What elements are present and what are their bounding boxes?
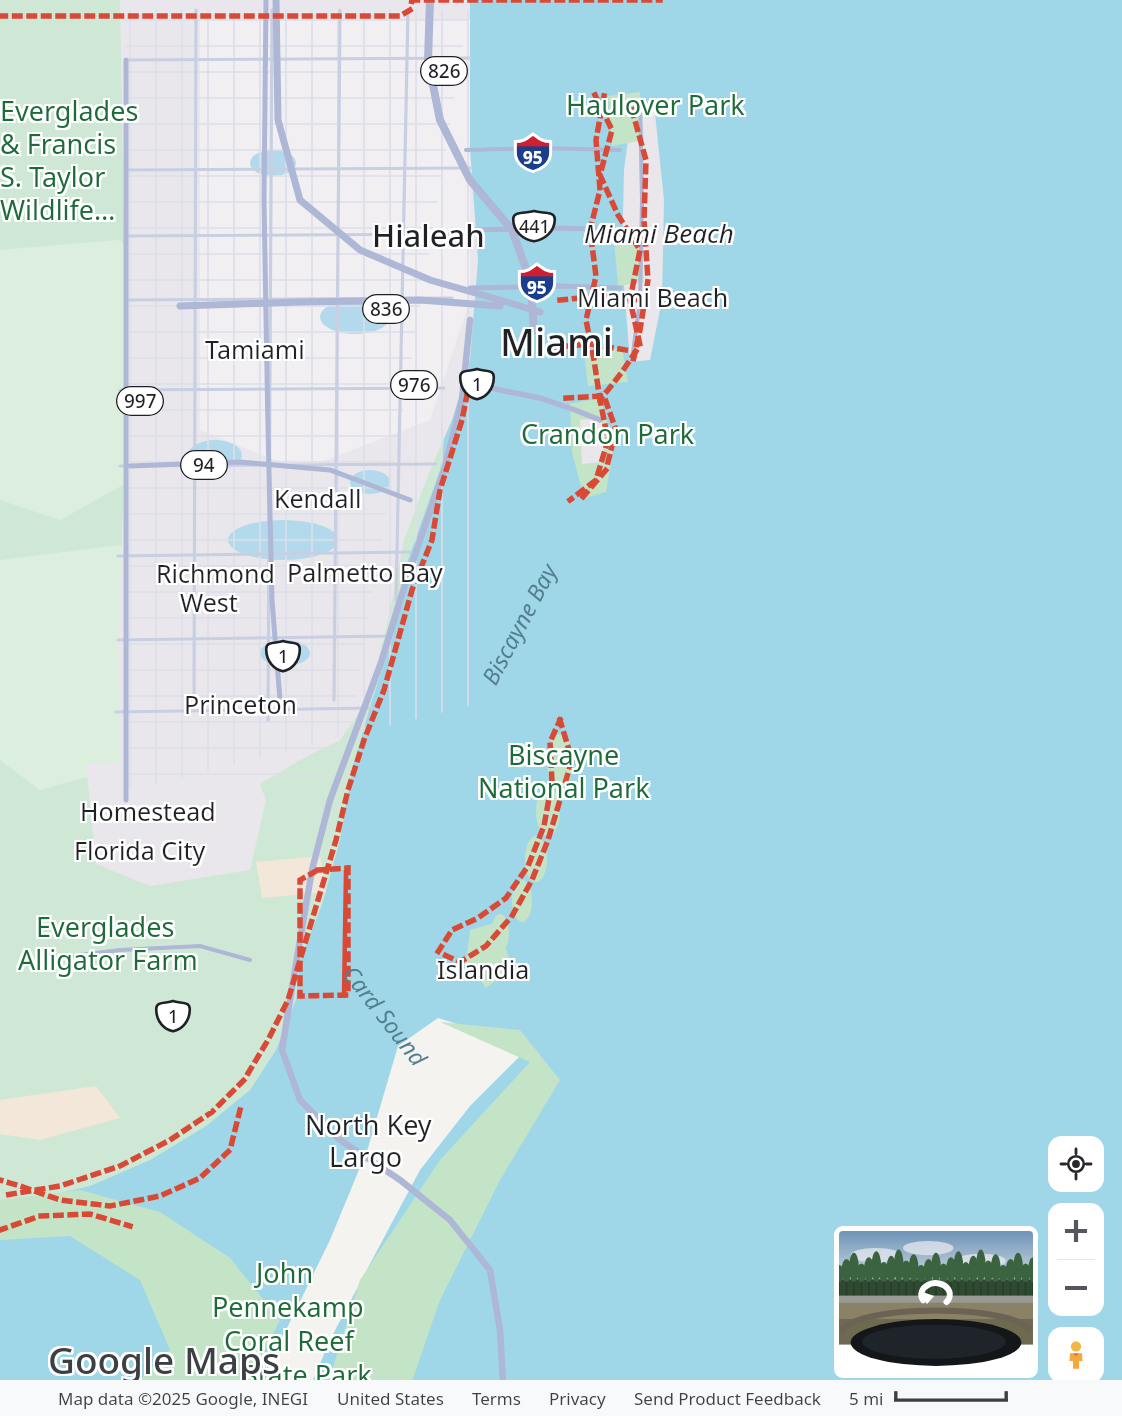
button[interactable]: Route 997: [116, 386, 164, 416]
button[interactable]: Street View pegman: [1048, 1327, 1104, 1383]
staticText: Miami Beach: [582, 215, 732, 250]
staticText: Alligator Farm: [18, 943, 198, 980]
staticText: Pennekamp: [214, 1286, 366, 1323]
staticText: 1: [278, 644, 289, 669]
button[interactable]: US route 1: [152, 999, 194, 1032]
staticText: John: [254, 1252, 312, 1289]
staticText: Palmetto Bay: [287, 557, 443, 591]
button[interactable]: US route 441: [508, 209, 560, 242]
button[interactable]: Route 826: [420, 56, 468, 86]
staticText: Crandon Park: [521, 413, 695, 450]
staticText: Kendall: [274, 481, 362, 515]
staticText: Miami Beach: [584, 213, 734, 248]
staticText: Biscayne: [506, 736, 618, 773]
staticText: 826: [428, 58, 461, 84]
staticText: National Park: [478, 769, 650, 806]
staticText: Florida City: [76, 835, 208, 869]
staticText: Princeton: [184, 687, 298, 721]
staticText: Alligator Farm: [20, 943, 200, 980]
staticText: Haulover Park: [568, 88, 747, 125]
staticText: West: [178, 587, 236, 621]
staticText: National Park: [476, 769, 648, 806]
staticText: Miami Beach: [579, 280, 731, 314]
staticText: Coral Reef: [222, 1320, 352, 1357]
staticText: Largo: [329, 1138, 403, 1175]
button[interactable]: Route 976: [390, 370, 438, 400]
staticText: John: [258, 1254, 316, 1291]
staticText: Richmond: [154, 558, 273, 592]
staticText: Biscayne: [510, 734, 622, 771]
button[interactable]: Privacy: [549, 1387, 606, 1410]
staticText: Wildlife…: [0, 189, 114, 226]
staticText: Wildlife…: [0, 193, 114, 230]
button[interactable]: Send Product Feedback: [634, 1387, 821, 1410]
button[interactable]: Terms: [472, 1387, 521, 1410]
staticText: Princeton: [182, 687, 296, 721]
button[interactable]: Zoom in: [1048, 1203, 1104, 1259]
staticText: Google Maps: [48, 1334, 280, 1384]
staticText: Palmetto Bay: [289, 553, 445, 587]
staticText: North Key: [305, 1104, 432, 1141]
staticText: Richmond: [156, 554, 275, 588]
staticText: Google Maps: [46, 1332, 278, 1382]
staticText: Crandon Park: [523, 417, 697, 454]
staticText: Florida City: [72, 831, 204, 865]
staticText: State Park: [245, 1358, 374, 1395]
staticText: Miami Beach: [577, 280, 729, 314]
staticText: State Park: [241, 1356, 370, 1393]
button[interactable]: Interstate 95: [516, 262, 558, 302]
staticText: Send Product Feedback: [634, 1387, 821, 1410]
button[interactable]: United States: [337, 1387, 444, 1410]
staticText: Everglades: [36, 910, 175, 947]
staticText: Google Maps: [50, 1332, 282, 1382]
staticText: Everglades: [2, 92, 141, 129]
staticText: Kendall: [274, 483, 362, 517]
button[interactable]: Zoom out: [1048, 1260, 1104, 1316]
button[interactable]: Google Maps: [48, 1334, 280, 1384]
button[interactable]: US route 1: [456, 367, 498, 400]
staticText: North Key: [305, 1106, 432, 1143]
staticText: Hialeah: [372, 212, 485, 254]
staticText: S. Taylor: [0, 156, 106, 193]
button[interactable]: Street View preview: [839, 1231, 1033, 1373]
staticText: West: [180, 583, 238, 617]
staticText: Everglades: [38, 910, 177, 947]
staticText: & Francis: [0, 123, 115, 160]
staticText: Palmetto Bay: [285, 557, 441, 591]
button[interactable]: My location: [1048, 1136, 1104, 1192]
button[interactable]: Route 94: [180, 450, 228, 480]
staticText: State Park: [245, 1356, 374, 1393]
staticText: Islandia: [439, 950, 532, 984]
staticText: Hialeah: [370, 214, 483, 256]
staticText: Homestead: [80, 792, 216, 826]
staticText: Largo: [331, 1136, 405, 1173]
staticText: Islandia: [439, 954, 532, 988]
staticText: Privacy: [549, 1387, 606, 1410]
staticText: Miami Beach: [575, 280, 727, 314]
staticText: Florida City: [72, 833, 204, 867]
button[interactable]: US route 1: [262, 639, 304, 672]
staticText: Everglades: [38, 908, 177, 945]
staticText: West: [178, 585, 236, 619]
staticText: Richmond: [158, 558, 277, 592]
staticText: North Key: [307, 1108, 434, 1145]
staticText: John: [256, 1256, 314, 1293]
staticText: S. Taylor: [0, 158, 104, 195]
staticText: Everglades: [36, 908, 175, 945]
staticText: National Park: [476, 767, 648, 804]
button[interactable]: Interstate 95: [512, 132, 554, 172]
staticText: Everglades: [0, 90, 139, 127]
staticText: Hialeah: [370, 216, 483, 258]
staticText: Everglades: [2, 94, 141, 131]
staticText: Everglades: [0, 94, 137, 131]
button[interactable]: Route 836: [362, 294, 410, 324]
staticText: Hialeah: [374, 216, 487, 258]
staticText: Princeton: [182, 689, 296, 723]
staticText: National Park: [480, 767, 652, 804]
staticText: Crandon Park: [519, 417, 693, 454]
staticText: Miami Beach: [575, 282, 727, 316]
staticText: Crandon Park: [519, 415, 693, 452]
staticText: Largo: [329, 1136, 403, 1173]
staticText: Tamiami: [203, 332, 303, 366]
staticText: Richmond: [158, 556, 277, 590]
